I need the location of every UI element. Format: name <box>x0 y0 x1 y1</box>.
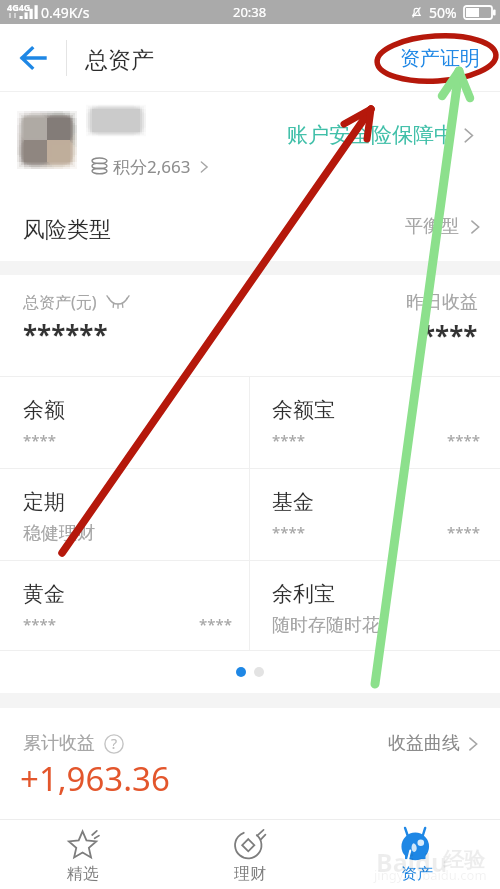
staticText: **** <box>199 614 233 634</box>
staticText: **** <box>272 522 306 542</box>
button[interactable]: 基金 <box>250 469 500 560</box>
staticText: 账户安全险保障中 <box>287 122 455 148</box>
staticText: **** <box>23 430 57 450</box>
staticText: 风险类型 <box>23 216 111 244</box>
staticText: +1,963.36 <box>20 756 170 801</box>
button[interactable]: 黄金 <box>0 561 249 650</box>
staticText: 4G4G <box>7 1 31 13</box>
staticText: ? <box>111 734 118 753</box>
button[interactable]: 余额宝 <box>250 377 500 468</box>
button[interactable]: 定期 <box>0 469 249 560</box>
button[interactable]: 风险类型 <box>0 192 500 261</box>
staticText: 0.49K/s <box>41 3 90 22</box>
button[interactable]: Toggle balance visibility <box>107 295 129 309</box>
staticText: 理财 <box>234 864 266 884</box>
staticText: 经验 <box>443 847 485 873</box>
staticText: 昨日收益 <box>406 291 478 314</box>
staticText: 定期 <box>23 489 65 515</box>
staticText: 随时存随时花 <box>272 614 380 637</box>
staticText: 余额 <box>23 397 65 423</box>
staticText: 50% <box>429 3 457 22</box>
staticText: 精选 <box>67 864 99 884</box>
button[interactable]: 理财 <box>166 820 333 889</box>
staticText: **** <box>447 430 481 450</box>
staticText: 平衡型 <box>405 215 459 238</box>
staticText: jingyan.baidu.com <box>374 866 487 884</box>
button[interactable]: 资产 <box>333 820 500 889</box>
staticText: 收益曲线 <box>388 732 460 755</box>
button[interactable]: 资产证明 <box>380 24 500 92</box>
staticText: 20:38 <box>233 3 267 21</box>
staticText: 资产证明 <box>400 46 480 71</box>
button[interactable]: Help <box>104 734 124 754</box>
staticText: 黄金 <box>23 581 65 607</box>
staticText: **** <box>421 318 478 353</box>
button[interactable]: Back <box>0 24 66 92</box>
button[interactable]: 收益曲线 <box>388 732 480 755</box>
staticText: 累计收益 <box>23 732 95 755</box>
staticText: 基金 <box>272 489 314 515</box>
button[interactable]: 余额 <box>0 377 249 468</box>
staticText: **** <box>23 614 57 634</box>
staticText: 总资产 <box>85 46 154 75</box>
staticText: 资产 <box>401 864 433 884</box>
staticText: Baidu <box>376 845 448 879</box>
button[interactable]: 余利宝 <box>250 561 500 650</box>
button[interactable]: 精选 <box>0 820 166 889</box>
staticText: **** <box>447 522 481 542</box>
staticText: **** <box>272 430 306 450</box>
staticText: 余额宝 <box>272 397 335 423</box>
staticText: 积分2,663 <box>113 155 191 178</box>
staticText: 余利宝 <box>272 581 335 607</box>
staticText: 总资产(元) <box>23 291 97 313</box>
staticText: 稳健理财 <box>23 522 95 545</box>
staticText: ****** <box>23 317 108 352</box>
button[interactable]: 账户安全险保障中 <box>287 122 476 148</box>
button[interactable]: 积分2,663 <box>92 155 210 178</box>
